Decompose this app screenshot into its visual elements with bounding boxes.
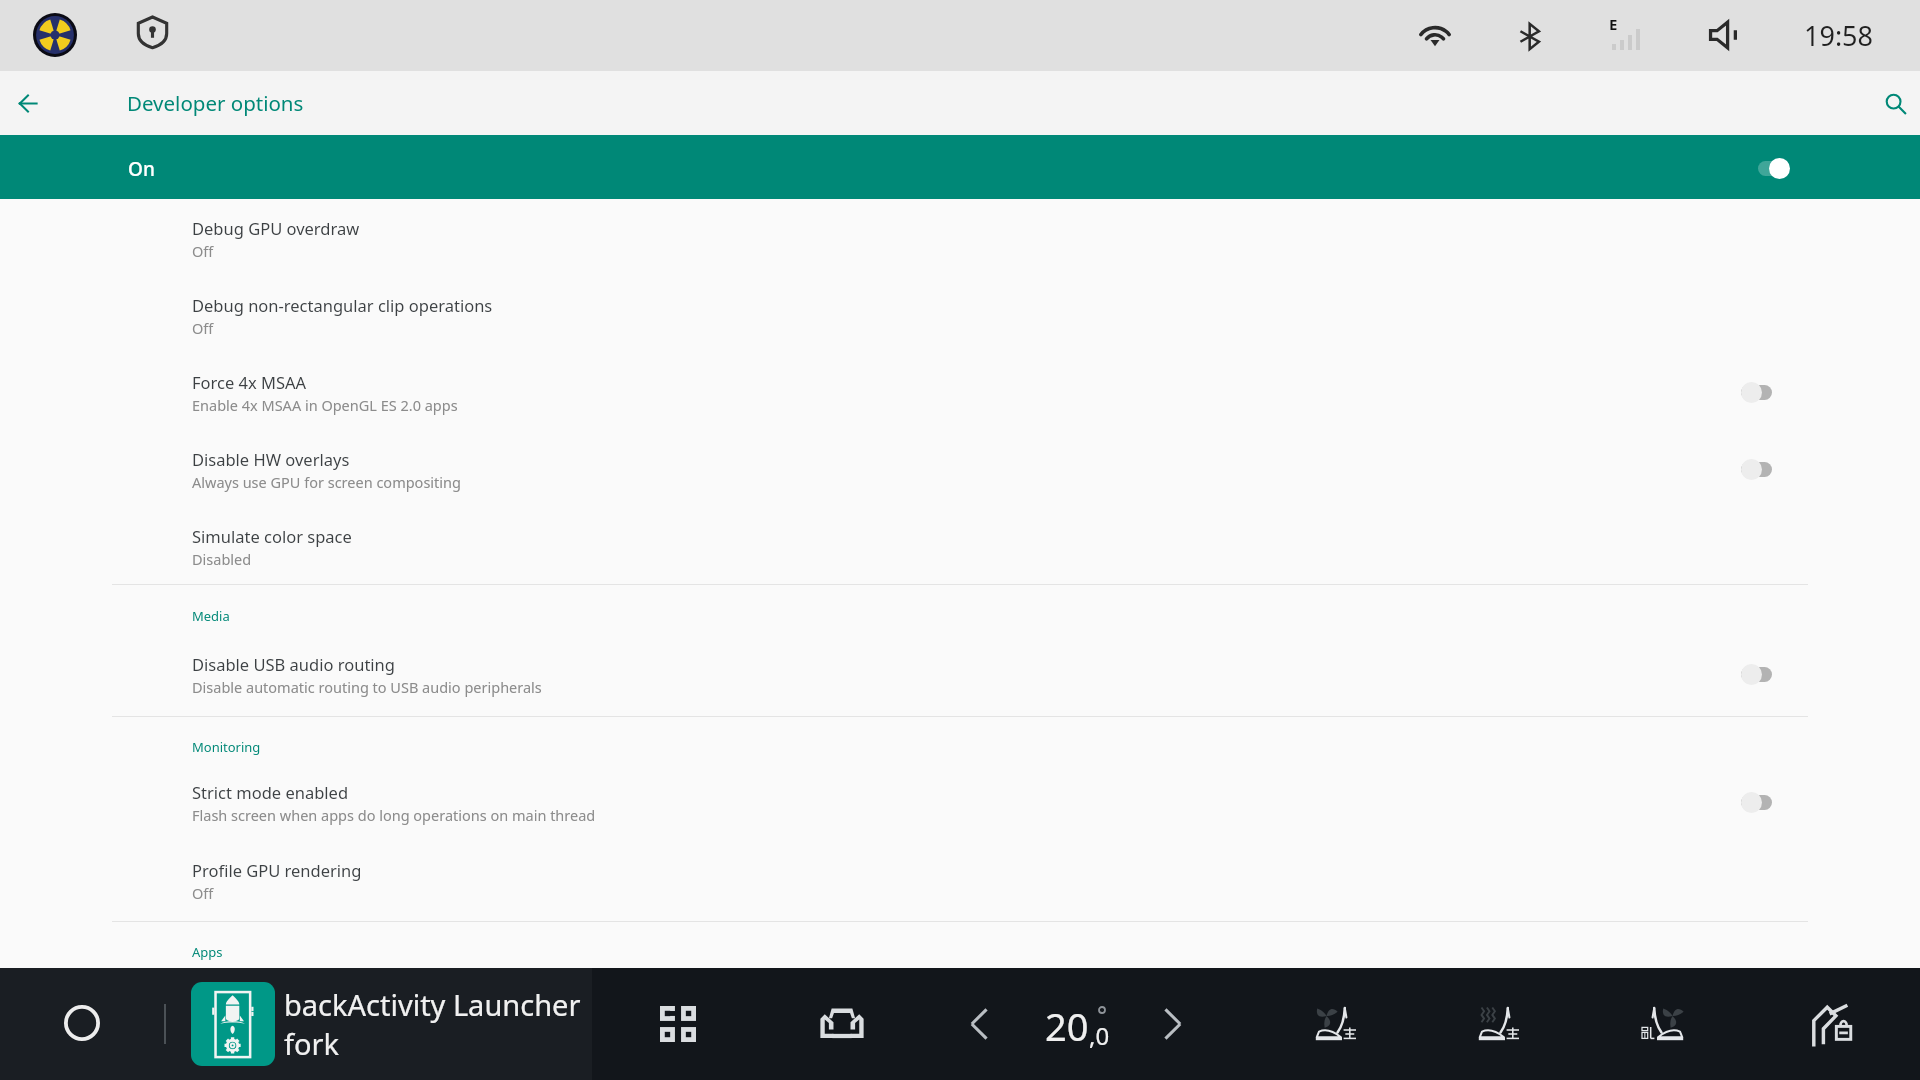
button[interactable]: backActivity Launcher fork: [191, 982, 588, 1066]
staticText: 20: [1045, 1000, 1089, 1052]
button[interactable]: Increase temperature: [1141, 992, 1205, 1056]
button[interactable]: Decrease temperature: [947, 992, 1011, 1056]
staticText: Disable HW overlays: [192, 448, 350, 470]
staticText: Profile GPU rendering: [192, 859, 362, 881]
button[interactable]: Disable USB audio routing: [0, 635, 1920, 712]
button[interactable]: Search: [1868, 76, 1920, 132]
button[interactable]: Car: [810, 992, 874, 1056]
button[interactable]: On: [0, 135, 1920, 199]
button[interactable]: 20: [1045, 1000, 1110, 1052]
staticText: Off: [192, 241, 214, 261]
button[interactable]: All apps: [646, 992, 710, 1056]
staticText: backActivity Launcher fork: [284, 985, 588, 1063]
staticText: Disabled: [192, 549, 252, 569]
button[interactable]: Child lock: [1801, 992, 1865, 1056]
button[interactable]: Disable HW overlays: [0, 430, 1920, 507]
staticText: Enable 4x MSAA in OpenGL ES 2.0 apps: [192, 395, 458, 415]
staticText: Debug non-rectangular clip operations: [192, 294, 493, 316]
button[interactable]: Driver seat heating: [1468, 992, 1532, 1056]
staticText: Disable USB audio routing: [192, 653, 395, 675]
staticText: E: [1609, 14, 1618, 34]
staticText: Flash screen when apps do long operation…: [192, 805, 596, 825]
button[interactable]: Strict mode enabled: [0, 763, 1920, 840]
staticText: Force 4x MSAA: [192, 371, 307, 393]
staticText: Strict mode enabled: [192, 781, 349, 803]
button[interactable]: Simulate color space: [0, 507, 1920, 584]
staticText: ,0: [1089, 1019, 1110, 1052]
staticText: Media: [192, 607, 230, 625]
staticText: Simulate color space: [192, 525, 352, 547]
staticText: Disable automatic routing to USB audio p…: [192, 677, 542, 697]
staticText: On: [128, 156, 155, 182]
staticText: Debug GPU overdraw: [192, 217, 360, 239]
button[interactable]: Home: [50, 991, 114, 1055]
button[interactable]: Driver seat ventilation: [1305, 992, 1369, 1056]
staticText: 19:58: [1804, 17, 1874, 54]
button[interactable]: Debug GPU overdraw: [0, 199, 1920, 276]
button[interactable]: Force 4x MSAA: [0, 353, 1920, 430]
button[interactable]: Debug non-rectangular clip operations: [0, 276, 1920, 353]
button[interactable]: Passenger seat ventilation: [1630, 992, 1694, 1056]
staticText: Developer options: [127, 89, 304, 117]
button[interactable]: Back: [0, 75, 56, 131]
staticText: Off: [192, 318, 214, 338]
staticText: Off: [192, 883, 214, 903]
staticText: Monitoring: [192, 738, 261, 756]
button[interactable]: Profile GPU rendering: [0, 841, 1920, 918]
staticText: Apps: [192, 943, 223, 961]
staticText: Always use GPU for screen compositing: [192, 472, 461, 492]
